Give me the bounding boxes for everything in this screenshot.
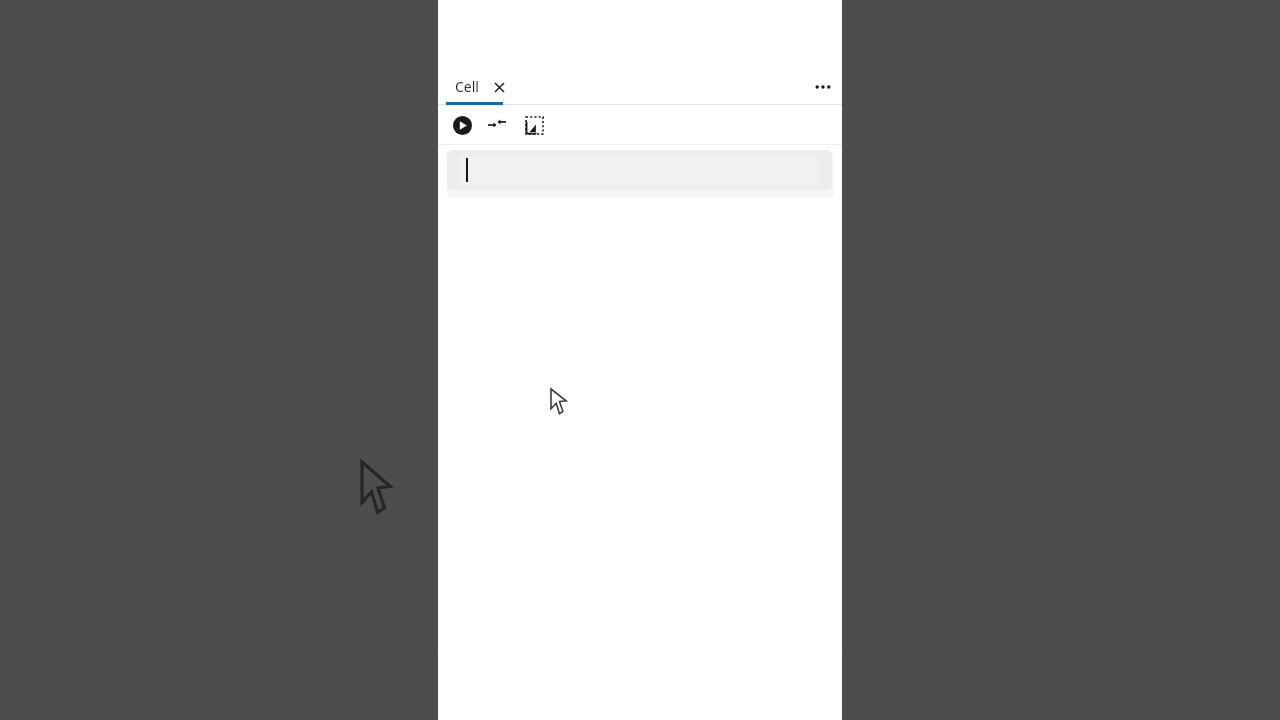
button[interactable]: Run cell — [447, 110, 477, 140]
button[interactable]: Cell — [446, 68, 516, 105]
button[interactable]: More options — [808, 72, 838, 102]
button[interactable]: Code input — [447, 150, 832, 190]
button[interactable]: Close tab — [490, 78, 508, 96]
staticText: Cell — [455, 77, 479, 96]
button[interactable]: Collapse — [482, 110, 512, 140]
button[interactable]: Select cell — [519, 110, 549, 140]
